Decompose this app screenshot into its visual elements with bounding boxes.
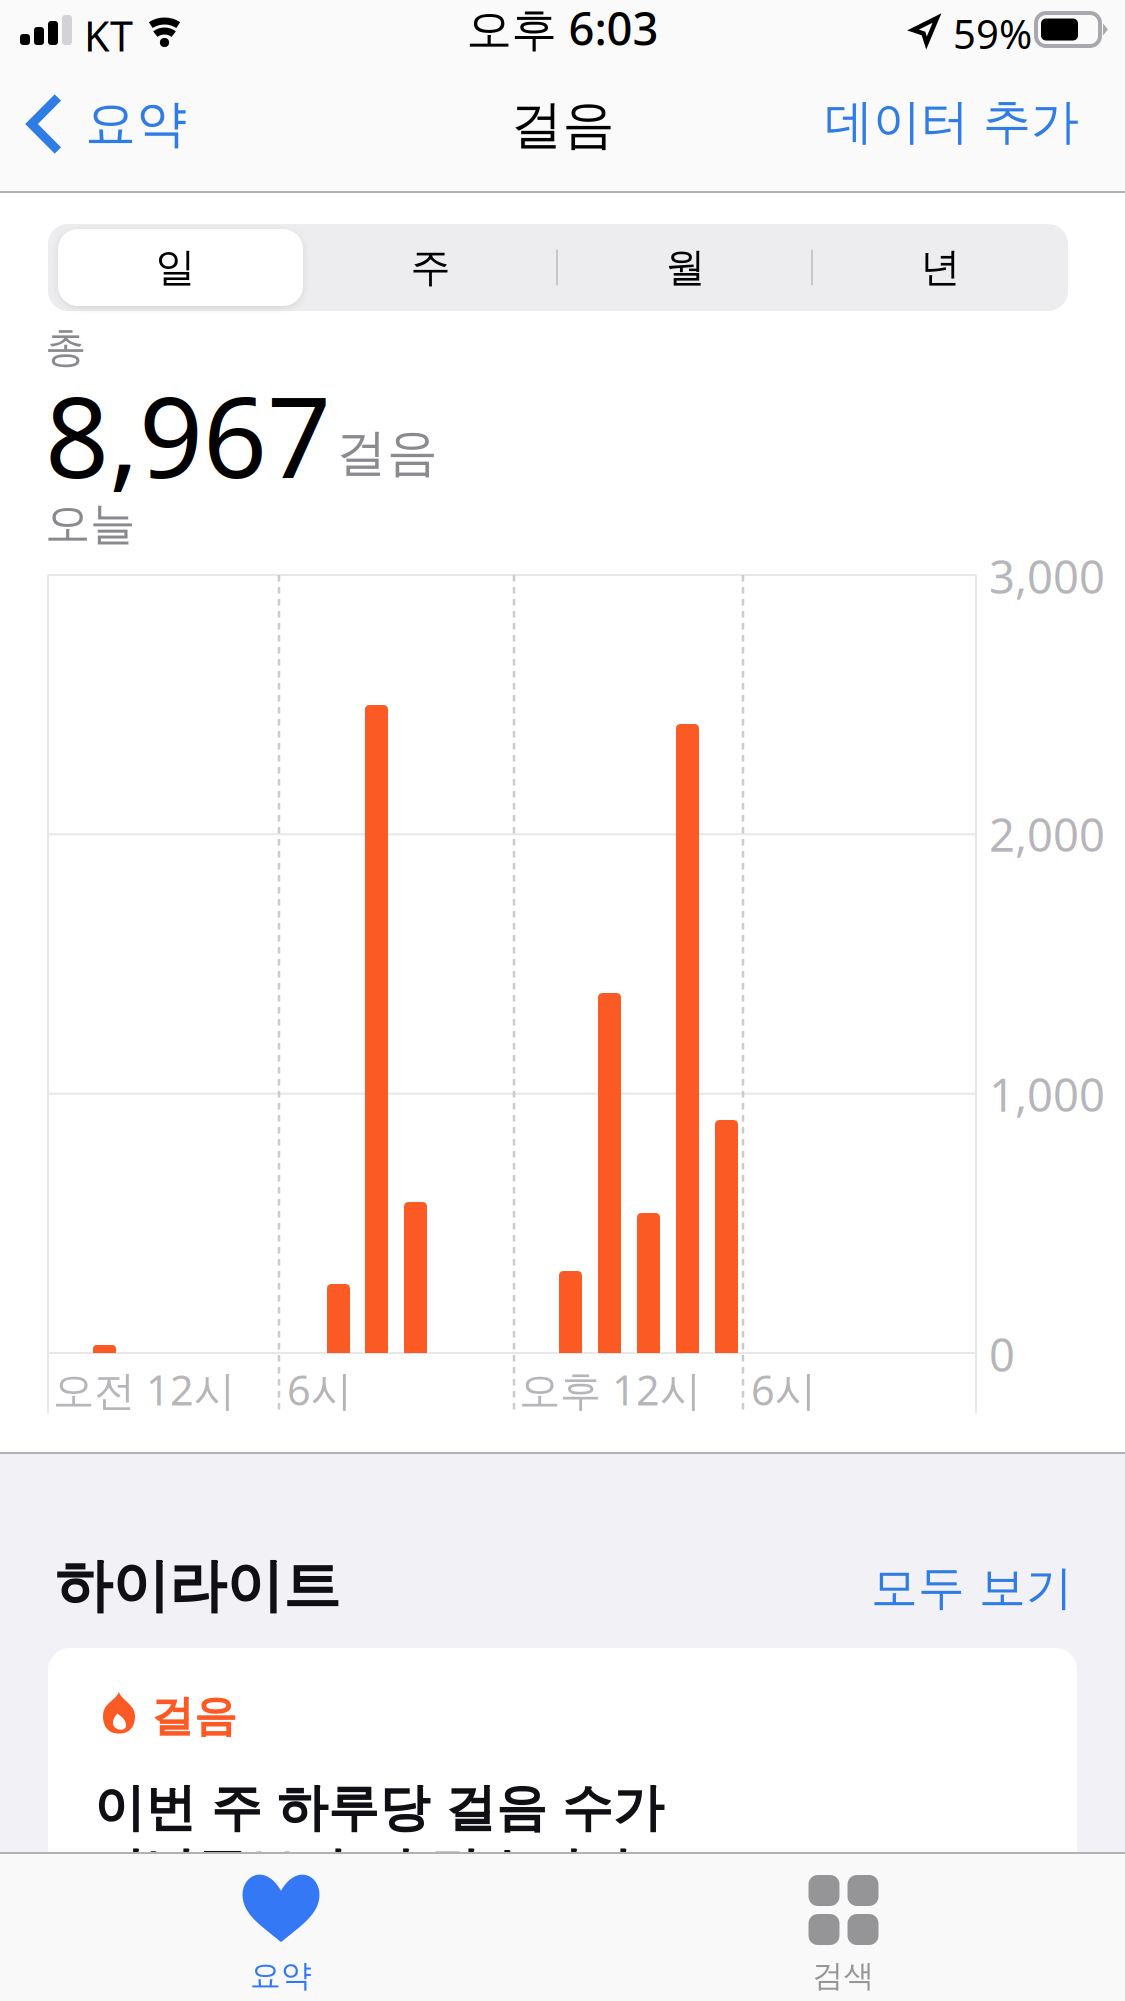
staticText: 6시	[751, 1362, 816, 1417]
staticText: 검색	[812, 1957, 874, 1995]
staticText: 년	[920, 243, 960, 292]
staticText: 요약	[85, 93, 187, 155]
staticText: 2,000	[989, 804, 1105, 864]
staticText: 걸음	[510, 93, 614, 157]
button[interactable]	[48, 1648, 1077, 2001]
button[interactable]: 년	[813, 224, 1068, 311]
staticText: 오후 12시	[519, 1362, 701, 1417]
staticText: 데이터 추가	[825, 92, 1079, 151]
staticText: 1,000	[989, 1064, 1105, 1124]
staticText: 0	[989, 1324, 1015, 1384]
button[interactable]: 요약	[14, 64, 254, 184]
button[interactable]: 월	[558, 224, 813, 311]
staticText: 총	[45, 322, 86, 373]
button[interactable]: 일	[48, 224, 303, 311]
staticText: 6시	[287, 1362, 352, 1417]
staticText: 하이라이트	[55, 1551, 340, 1621]
staticText: 오늘	[45, 496, 135, 552]
staticText: 3,000	[989, 546, 1105, 606]
staticText: 월	[665, 243, 705, 292]
button[interactable]: 데이터 추가	[780, 62, 1125, 182]
staticText: 주	[410, 243, 450, 292]
staticText: 오후 6:03	[466, 0, 658, 58]
staticText: 걸음	[336, 422, 438, 484]
staticText: 오전 12시	[53, 1362, 235, 1417]
staticText: 59%	[953, 7, 1032, 60]
staticText: KT	[84, 8, 133, 63]
button[interactable]: 모두 보기	[732, 1560, 1084, 1616]
staticText: 걸음	[151, 1690, 237, 1742]
staticText: 일	[155, 243, 195, 292]
button[interactable]: 주	[303, 224, 558, 311]
staticText: 모두 보기	[871, 1559, 1073, 1617]
staticText: 이번 주 하루당 걸음 수가	[94, 1777, 664, 1839]
staticText: 지난주보다 더 많습니다.	[94, 1836, 648, 1903]
staticText: 요약	[250, 1957, 312, 1995]
staticText: 8,967	[45, 360, 331, 509]
button[interactable]: 검색	[562, 1854, 1125, 2001]
button[interactable]: 요약	[0, 1854, 562, 2001]
